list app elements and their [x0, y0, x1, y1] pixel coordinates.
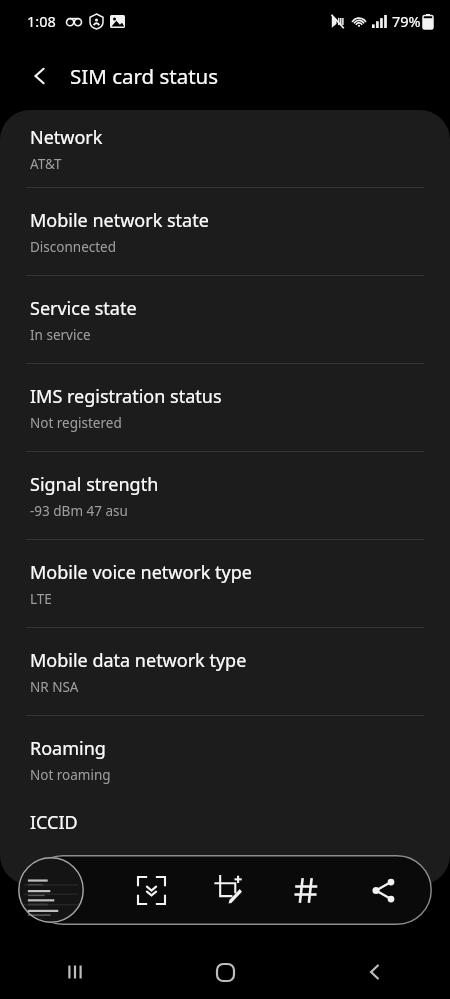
staticText: Service state — [30, 296, 137, 321]
staticText: Signal strength — [30, 472, 159, 497]
button[interactable]: Service state — [0, 276, 450, 363]
button[interactable]: Scroll capture — [123, 862, 179, 918]
staticText: NR NSA — [30, 678, 79, 696]
staticText: 79% — [392, 11, 421, 31]
staticText: Mobile data network type — [30, 648, 247, 673]
button[interactable]: Roaming — [0, 716, 450, 803]
staticText: 1:08 — [27, 11, 56, 31]
staticText: Roaming — [30, 736, 106, 761]
button[interactable]: Mobile network state — [0, 188, 450, 275]
staticText: IMS registration status — [30, 384, 222, 409]
staticText: LTE — [30, 590, 52, 608]
button[interactable]: Signal strength — [0, 452, 450, 539]
staticText: SIM card status — [70, 62, 219, 90]
button[interactable]: Mobile data network type — [0, 628, 450, 715]
staticText: Disconnected — [30, 238, 117, 256]
staticText: Not registered — [30, 414, 122, 432]
button[interactable]: Home — [150, 945, 300, 999]
button[interactable]: Mobile voice network type — [0, 540, 450, 627]
staticText: Not roaming — [30, 766, 111, 784]
staticText: Network — [30, 125, 103, 150]
button[interactable]: Back — [300, 945, 450, 999]
button[interactable]: IMS registration status — [0, 364, 450, 451]
staticText: Mobile voice network type — [30, 560, 252, 585]
staticText: Mobile network state — [30, 208, 209, 233]
staticText: In service — [30, 326, 91, 344]
button[interactable]: Recents — [0, 945, 150, 999]
button[interactable]: Share — [355, 862, 411, 918]
staticText: ICCID — [30, 810, 78, 835]
button[interactable]: Tags — [278, 862, 334, 918]
staticText: AT&T — [30, 155, 62, 173]
button[interactable]: Network — [0, 110, 450, 187]
button[interactable]: Screenshot preview — [18, 857, 84, 923]
staticText: -93 dBm 47 asu — [30, 502, 128, 520]
button[interactable]: Crop and edit — [200, 862, 256, 918]
button[interactable]: Back — [18, 54, 62, 98]
